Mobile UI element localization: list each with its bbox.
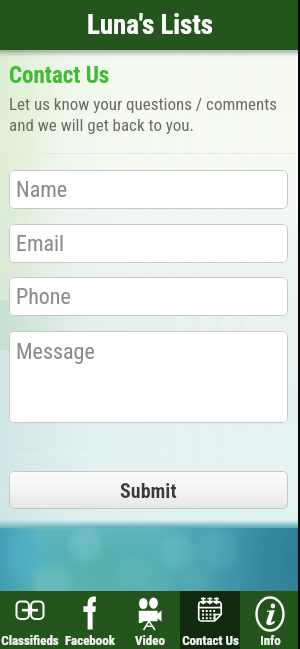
button[interactable]: Facebook — [60, 591, 120, 649]
button[interactable]: Submit — [9, 471, 288, 509]
staticText: Luna's Lists — [87, 9, 213, 41]
staticText: Contact Us — [182, 633, 239, 648]
button[interactable]: Message — [9, 331, 288, 423]
button[interactable]: Phone — [9, 277, 288, 316]
button[interactable]: Classifieds — [0, 591, 60, 649]
staticText: Email — [16, 231, 65, 257]
button[interactable]: Name — [9, 170, 288, 209]
staticText: Video — [135, 633, 165, 648]
button[interactable]: Info — [240, 591, 300, 649]
staticText: Let us know your questions / comments an… — [9, 94, 285, 135]
staticText: Info — [260, 633, 281, 648]
staticText: Classifieds — [1, 633, 59, 648]
staticText: Phone — [16, 284, 71, 310]
staticText: Submit — [120, 479, 177, 502]
button[interactable]: Contact Us — [180, 591, 240, 649]
staticText: Name — [16, 177, 68, 203]
staticText: Contact Us — [9, 62, 110, 89]
button[interactable]: Email — [9, 224, 288, 263]
staticText: Facebook — [65, 633, 115, 648]
button[interactable]: Video — [120, 591, 180, 649]
staticText: Message — [16, 339, 95, 365]
